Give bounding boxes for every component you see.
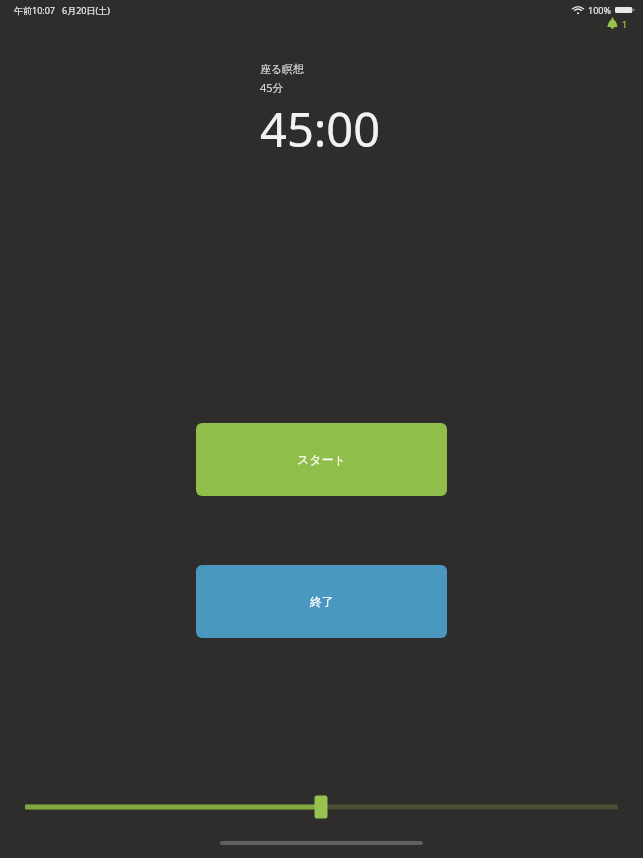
staticText: 午前10:07 6月20日(土) [14, 4, 110, 16]
button[interactable]: スタート [196, 423, 447, 496]
staticText: 45:00 [260, 97, 381, 161]
staticText: 100% [588, 4, 611, 16]
button[interactable]: 終了 [196, 565, 447, 638]
staticText: 終了 [310, 594, 334, 609]
staticText: 座る瞑想 [260, 62, 305, 76]
button[interactable]: Duration slider [0, 795, 643, 823]
staticText: 45分 [260, 80, 284, 95]
staticText: スタート [297, 452, 346, 467]
staticText: 1 [622, 18, 628, 30]
button[interactable]: Notifications [605, 16, 628, 31]
